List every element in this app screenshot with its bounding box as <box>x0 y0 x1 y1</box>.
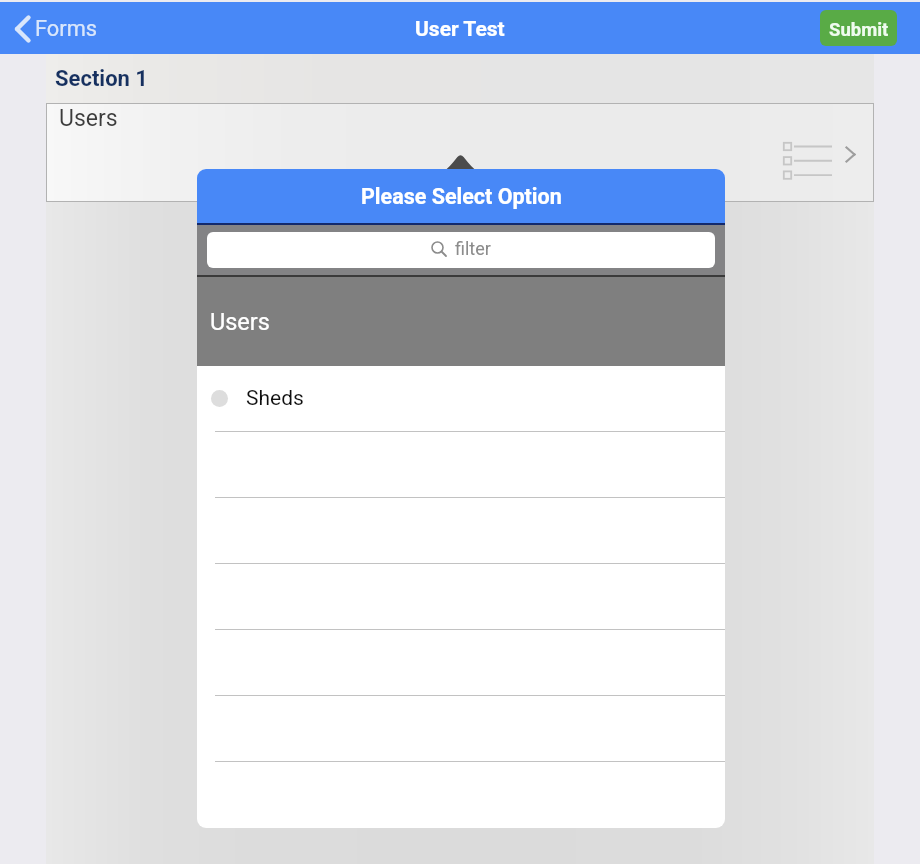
button[interactable] <box>197 498 725 564</box>
button[interactable]: Submit <box>820 10 897 46</box>
button[interactable]: filter <box>207 232 715 268</box>
button[interactable] <box>197 696 725 762</box>
staticText: Forms <box>35 16 98 42</box>
staticText: User Test <box>415 17 505 42</box>
button[interactable]: Options list <box>775 139 829 185</box>
button[interactable] <box>197 630 725 696</box>
button[interactable]: Open <box>840 141 860 169</box>
button[interactable]: Forms <box>0 14 106 42</box>
staticText: Submit <box>829 19 889 41</box>
button[interactable]: Sheds <box>197 366 725 432</box>
staticText: Users <box>59 105 118 132</box>
button[interactable] <box>197 432 725 498</box>
staticText: Please Select Option <box>361 184 562 209</box>
button[interactable]: Users <box>46 103 874 202</box>
staticText: Section 1 <box>55 66 148 92</box>
staticText: filter <box>455 238 491 259</box>
staticText: Sheds <box>246 386 304 411</box>
button[interactable] <box>197 564 725 630</box>
staticText: Users <box>210 308 270 336</box>
